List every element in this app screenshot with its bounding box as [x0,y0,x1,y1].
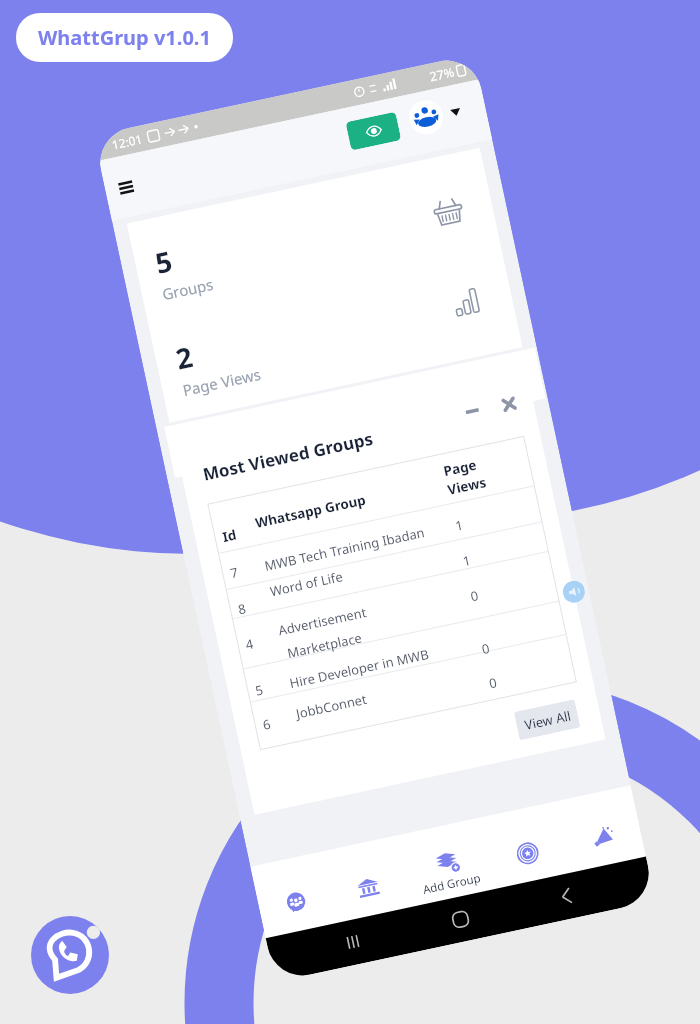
staticText: 5 [152,241,176,282]
staticText: 7 [228,563,240,582]
button[interactable]: Close [496,391,522,417]
staticText: 0 [487,673,499,692]
staticText: 1 [454,516,465,535]
staticText: View All [523,706,573,734]
button[interactable]: Sound [561,579,587,605]
staticText: WhattGrup v1.0.1 [38,24,211,51]
staticText: Add Group [421,870,482,898]
staticText: Most Viewed Groups [201,427,376,486]
button[interactable]: View All [514,699,580,740]
staticText: MWB Tech Training Ibadan [263,523,427,575]
staticText: 4 [244,634,255,654]
staticText: Page [442,455,479,480]
staticText: Groups [160,274,215,304]
staticText: Word of Life [268,567,344,600]
staticText: Id [221,525,238,546]
staticText: 27% [428,64,456,85]
staticText: 0 [480,639,492,658]
button[interactable]: Minimise [459,398,485,424]
staticText: Page Views [181,364,263,400]
button[interactable]: WhattGrup app icon [31,916,109,994]
staticText: 12:01 [110,130,144,152]
staticText: 2 [172,337,197,378]
staticText: Views [446,473,488,499]
staticText: JobbConnet [294,690,369,722]
button[interactable]: Home [444,904,475,934]
staticText: 8 [236,599,248,618]
button[interactable]: Groups [275,884,317,922]
staticText: 1 [461,551,473,570]
button[interactable]: Badge [507,834,549,873]
button[interactable]: Bank [347,868,389,907]
staticText: Advertisement [277,603,368,639]
button[interactable]: Account [406,97,446,137]
staticText: 0 [469,586,480,605]
button[interactable]: Add Group [410,843,488,901]
button[interactable]: Menu [112,172,140,201]
staticText: Whatsapp Group [253,491,368,532]
staticText: Hire Developer in MWB [288,645,430,692]
staticText: Marketplace [285,628,364,662]
staticText: 6 [261,714,273,734]
button[interactable]: Promote [582,819,624,858]
staticText: 5 [254,680,265,700]
button[interactable]: Back [552,882,581,910]
button[interactable]: Preview [345,112,401,151]
button[interactable]: WhattGrup v1.0.1 [16,13,233,62]
button[interactable]: Recents [338,928,367,956]
